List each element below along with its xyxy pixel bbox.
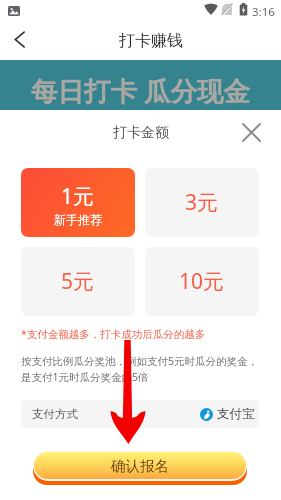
staticText: 3:16 <box>252 4 275 20</box>
staticText: 支付方式 <box>32 407 78 421</box>
staticText: 每日打卡 瓜分现金 <box>31 73 250 109</box>
button[interactable]: 确认报名 <box>34 452 246 479</box>
staticText: 确认报名 <box>111 457 169 475</box>
staticText: 1元 <box>61 182 95 211</box>
staticText: *支付金额越多，打卡成功后瓜分的越多 <box>21 327 206 341</box>
staticText: 打卡金额 <box>113 124 169 142</box>
button[interactable]: 支付方式 <box>21 400 259 428</box>
button[interactable]: Close <box>238 119 264 145</box>
button[interactable]: 10元 <box>145 247 259 316</box>
staticText: 按支付比例瓜分奖池，例如支付5元时瓜分的奖金， 是支付1元时瓜分奖金的5倍 <box>21 354 259 384</box>
button[interactable]: 3元 <box>145 168 259 237</box>
button[interactable]: 5元 <box>21 247 135 316</box>
staticText: 10元 <box>179 267 225 296</box>
staticText: 打卡赚钱 <box>119 31 183 51</box>
staticText: 支付宝 <box>217 406 255 422</box>
staticText: 5元 <box>61 267 95 296</box>
button[interactable]: 1元 <box>21 168 135 237</box>
staticText: 3元 <box>185 188 219 217</box>
button[interactable]: Back <box>1 22 37 58</box>
staticText: 新手推荐 <box>54 212 102 227</box>
